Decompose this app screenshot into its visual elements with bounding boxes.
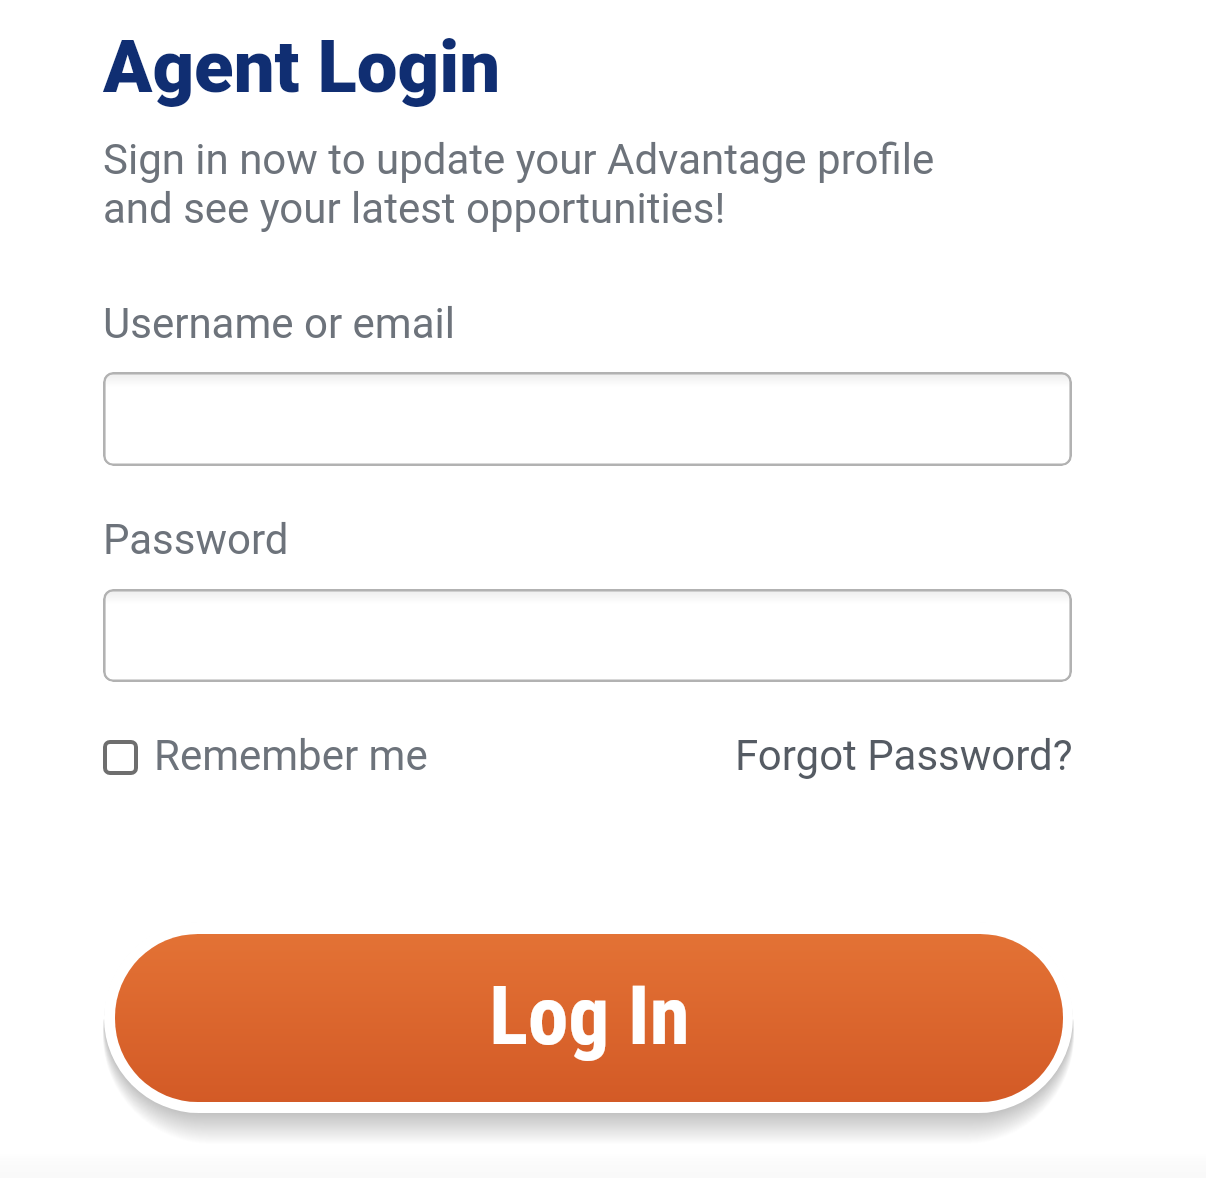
staticText: Username or email [103,299,455,348]
button[interactable]: Log In [115,934,1063,1102]
staticText: Agent Login [103,25,501,110]
button[interactable]: Forgot Password? [735,731,1073,780]
button[interactable]: Password field [103,589,1072,682]
staticText: Sign in now to update your Advantage pro… [103,135,983,233]
button[interactable]: Username or email field [103,372,1072,466]
staticText: Password [103,515,289,564]
staticText: Remember me [154,731,428,780]
button[interactable]: Remember me [95,722,442,792]
staticText: Log In [489,969,690,1064]
